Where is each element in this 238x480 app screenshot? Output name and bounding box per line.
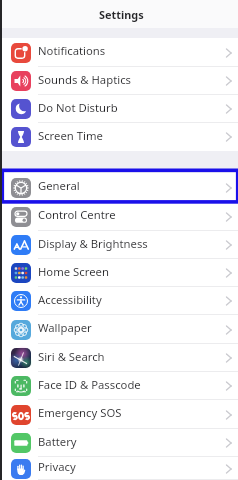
button[interactable]: Sounds & Haptics	[0, 67, 238, 95]
button[interactable]: Display & Brightness	[0, 231, 238, 259]
staticText: Wallpaper	[38, 320, 92, 335]
button[interactable]: Home Screen	[0, 259, 238, 287]
staticText: Emergency SOS	[38, 405, 122, 420]
button[interactable]: Screen Time	[0, 123, 238, 151]
button[interactable]: Accessibility	[0, 287, 238, 315]
button[interactable]: Battery	[0, 429, 238, 457]
staticText: Do Not Disturb	[38, 100, 118, 115]
staticText: Privacy	[38, 459, 76, 474]
staticText: Accessibility	[38, 292, 102, 307]
button[interactable]: Notifications	[0, 38, 238, 67]
button[interactable]: Privacy	[0, 457, 238, 480]
staticText: Home Screen	[38, 264, 109, 279]
staticText: Settings	[99, 7, 144, 22]
staticText: Siri & Search	[38, 349, 105, 364]
button[interactable]: Control Centre	[0, 202, 238, 231]
staticText: General	[38, 178, 80, 193]
button[interactable]: Wallpaper	[0, 315, 238, 344]
button[interactable]: Siri & Search	[0, 344, 238, 372]
staticText: Control Centre	[38, 207, 116, 222]
button[interactable]: Emergency SOS	[0, 400, 238, 429]
staticText: Screen Time	[38, 128, 103, 143]
staticText: Sounds & Haptics	[38, 72, 131, 87]
staticText: Notifications	[38, 43, 106, 58]
staticText: Display & Brightness	[38, 236, 148, 251]
button[interactable]: Do Not Disturb	[0, 95, 238, 123]
button[interactable]: Face ID & Passcode	[0, 372, 238, 400]
staticText: Face ID & Passcode	[38, 377, 141, 392]
button[interactable]: General	[0, 173, 238, 202]
staticText: Battery	[38, 434, 77, 449]
